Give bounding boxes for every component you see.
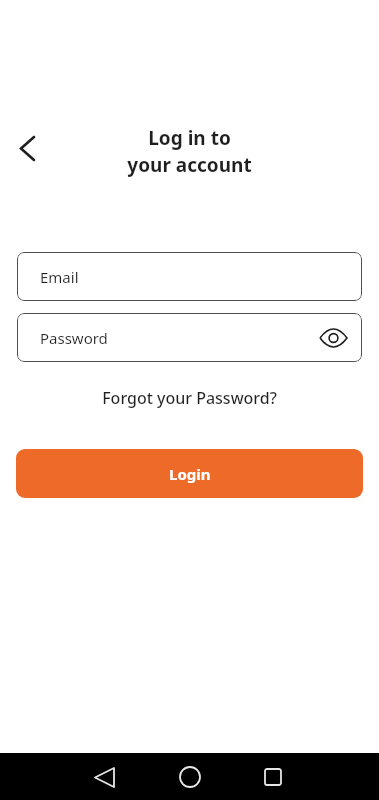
staticText: Login — [169, 464, 211, 484]
button[interactable] — [257, 761, 289, 793]
staticText: Email — [40, 267, 79, 287]
button[interactable] — [174, 761, 206, 793]
button[interactable]: Forgot your Password? — [0, 387, 379, 409]
button[interactable] — [14, 131, 40, 165]
button[interactable]: Password — [17, 313, 362, 362]
staticText: Password — [40, 328, 108, 348]
button[interactable] — [88, 761, 120, 793]
button[interactable]: Email — [17, 252, 362, 301]
staticText: Log in to your account — [0, 125, 379, 178]
button[interactable]: Login — [16, 449, 363, 498]
